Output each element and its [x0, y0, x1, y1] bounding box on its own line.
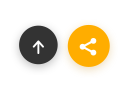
button[interactable]: Share [68, 25, 110, 67]
button[interactable]: Scroll to top [19, 26, 58, 64]
